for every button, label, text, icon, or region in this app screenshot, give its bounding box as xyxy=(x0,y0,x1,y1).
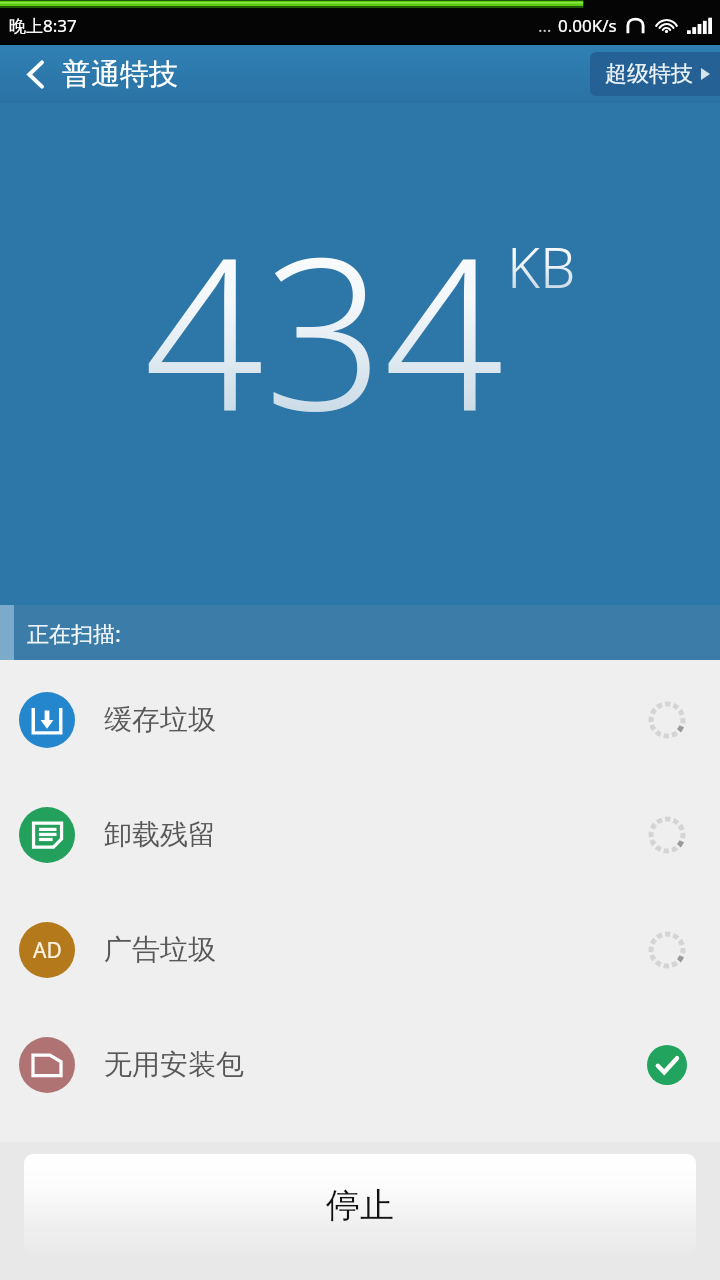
button[interactable]: AD xyxy=(0,892,720,1007)
staticText: 普通特技 xyxy=(62,56,178,93)
button[interactable]: Back xyxy=(0,51,194,98)
button[interactable]: 超级特技 xyxy=(590,52,720,96)
staticText: AD xyxy=(33,936,62,965)
staticText: 卸载残留 xyxy=(104,817,216,852)
staticText: 434 xyxy=(144,186,504,472)
staticText: 停止 xyxy=(326,1184,394,1227)
button[interactable]: 无用安装包 xyxy=(0,1007,720,1122)
staticText: 正在扫描: xyxy=(27,618,121,648)
staticText: 晚上8:37 xyxy=(9,14,77,37)
button[interactable]: 缓存垃圾 xyxy=(0,662,720,777)
staticText: 超级特技 xyxy=(605,60,693,88)
staticText: KB xyxy=(507,228,576,304)
staticText: 无用安装包 xyxy=(104,1047,244,1082)
button[interactable]: 停止 xyxy=(24,1154,696,1256)
staticText: 缓存垃圾 xyxy=(104,702,216,737)
staticText: 0.00K/s xyxy=(558,14,617,37)
button[interactable]: 卸载残留 xyxy=(0,777,720,892)
staticText: … xyxy=(538,14,552,37)
staticText: 广告垃圾 xyxy=(104,932,216,967)
